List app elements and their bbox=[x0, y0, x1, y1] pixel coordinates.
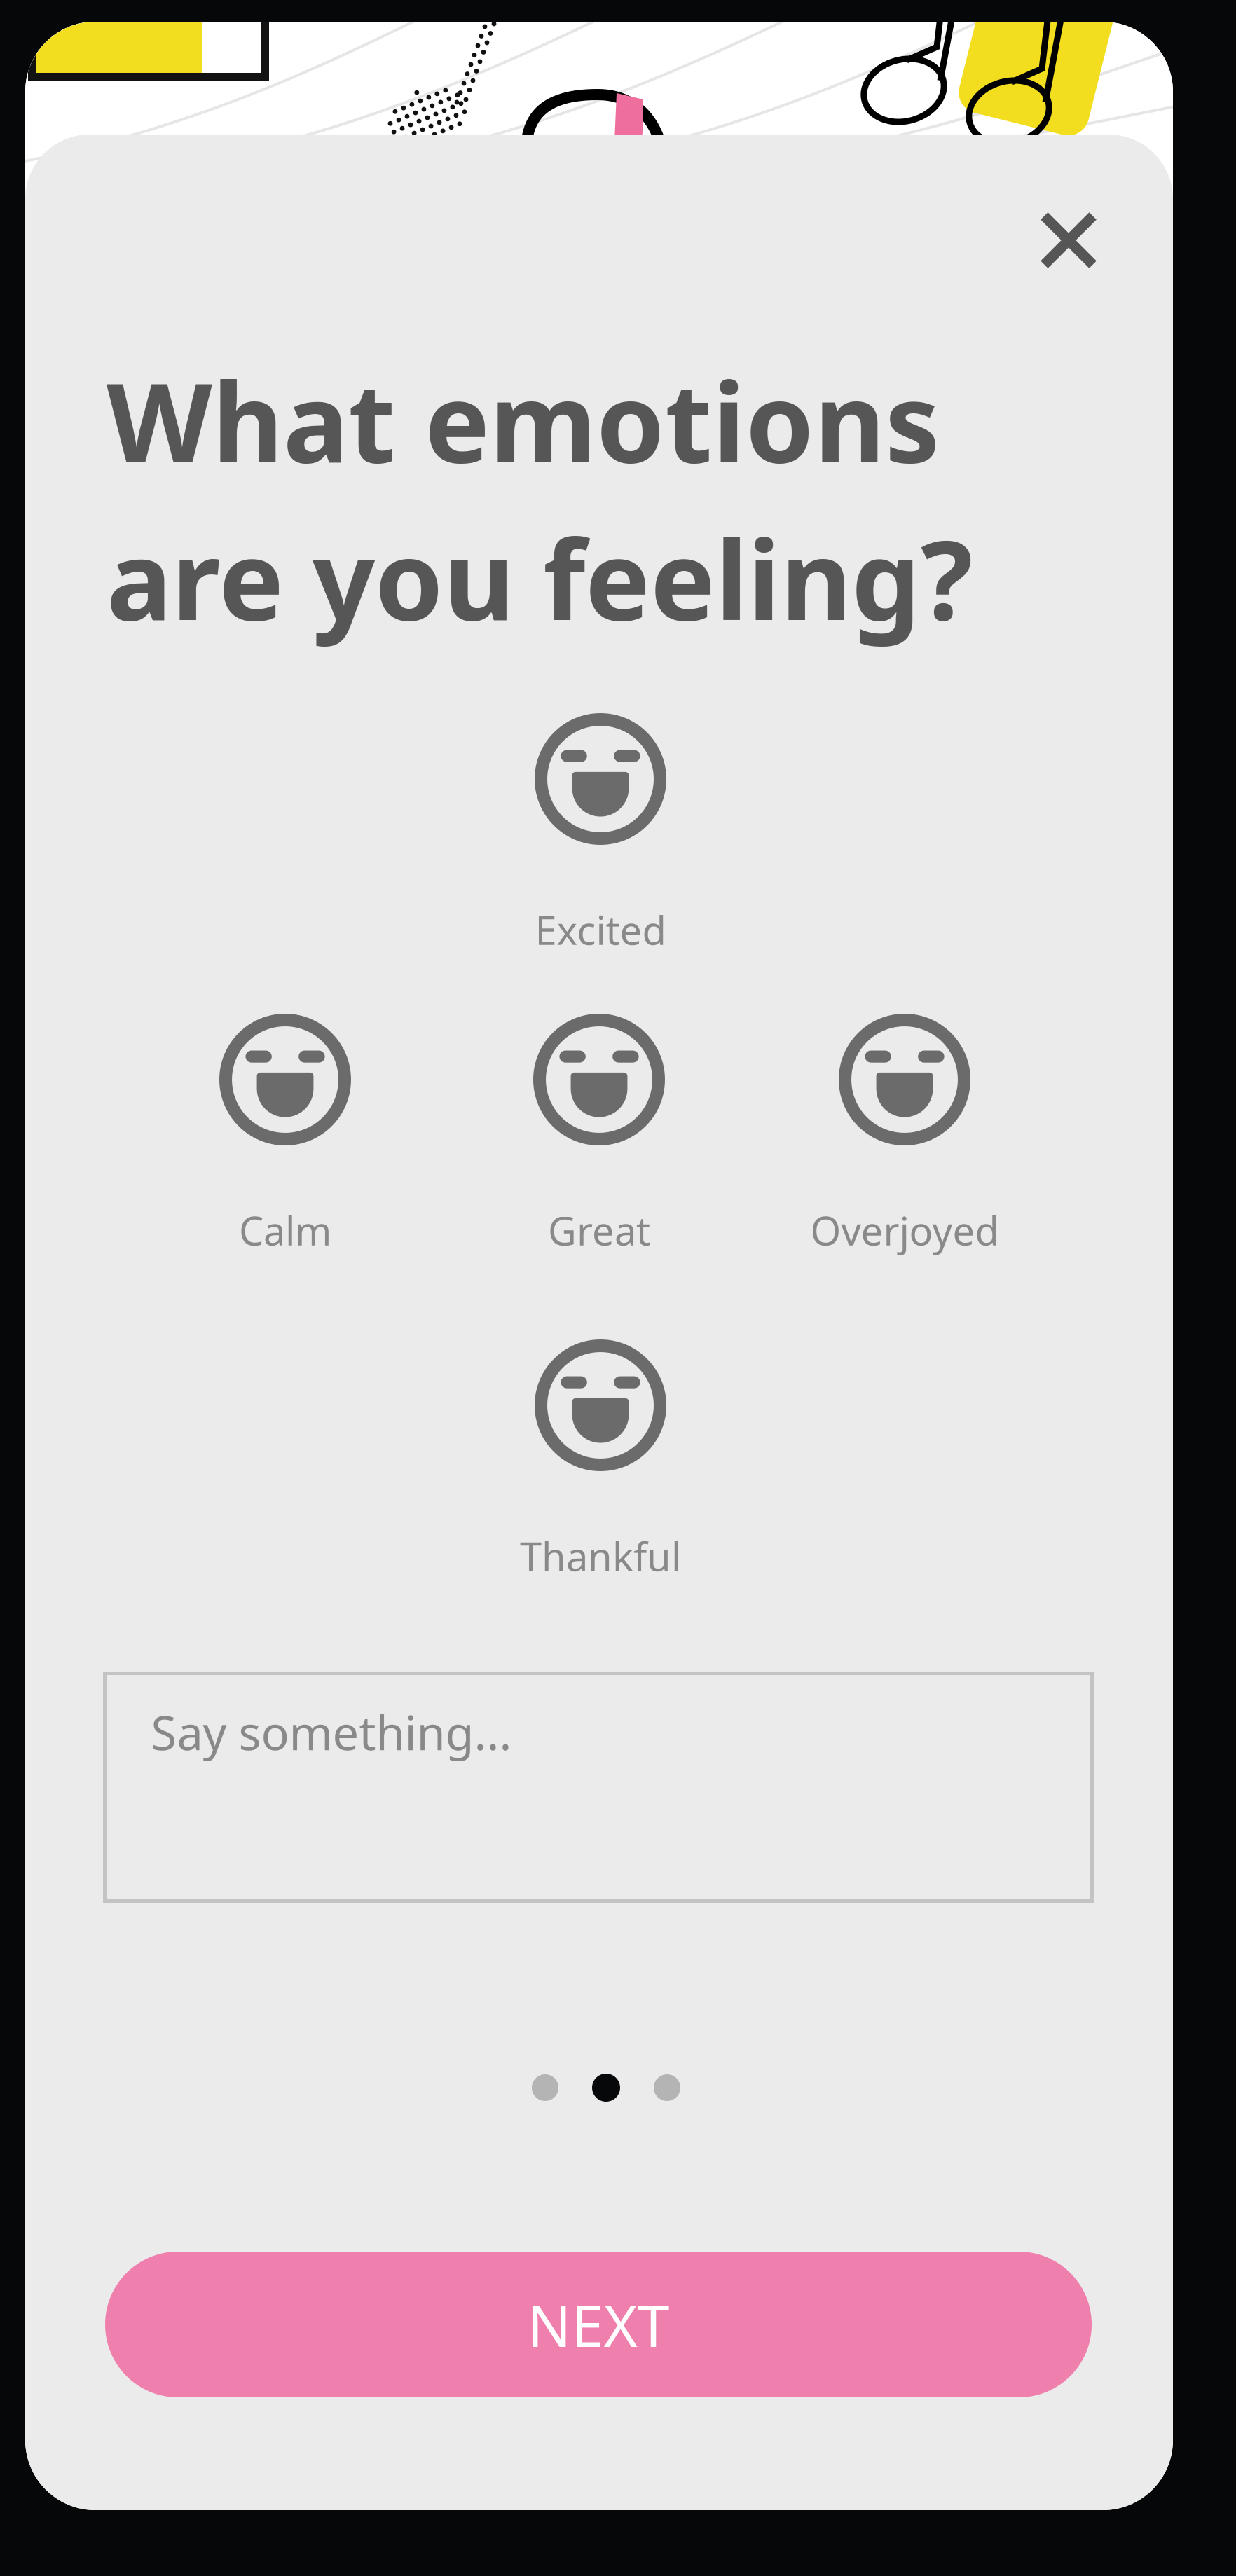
staticText: NEXT bbox=[527, 2286, 669, 2363]
staticText: What emotions bbox=[107, 347, 940, 493]
button[interactable]: Calm bbox=[135, 1014, 436, 1258]
button[interactable]: Thankful bbox=[450, 1339, 751, 1583]
button[interactable]: Close bbox=[1007, 179, 1130, 302]
staticText: Calm bbox=[239, 1204, 331, 1256]
button[interactable]: NEXT bbox=[105, 2252, 1092, 2397]
staticText: Overjoyed bbox=[810, 1204, 999, 1256]
staticText: Say something... bbox=[151, 1701, 512, 1763]
staticText: Great bbox=[548, 1204, 650, 1256]
staticText: Excited bbox=[535, 904, 666, 956]
button[interactable]: Say something... bbox=[105, 1673, 1092, 1901]
button[interactable]: Excited bbox=[450, 713, 751, 957]
button[interactable]: Overjoyed bbox=[754, 1014, 1055, 1258]
button[interactable]: Great bbox=[448, 1014, 750, 1258]
staticText: Thankful bbox=[520, 1530, 681, 1582]
staticText: are you feeling? bbox=[107, 505, 973, 650]
